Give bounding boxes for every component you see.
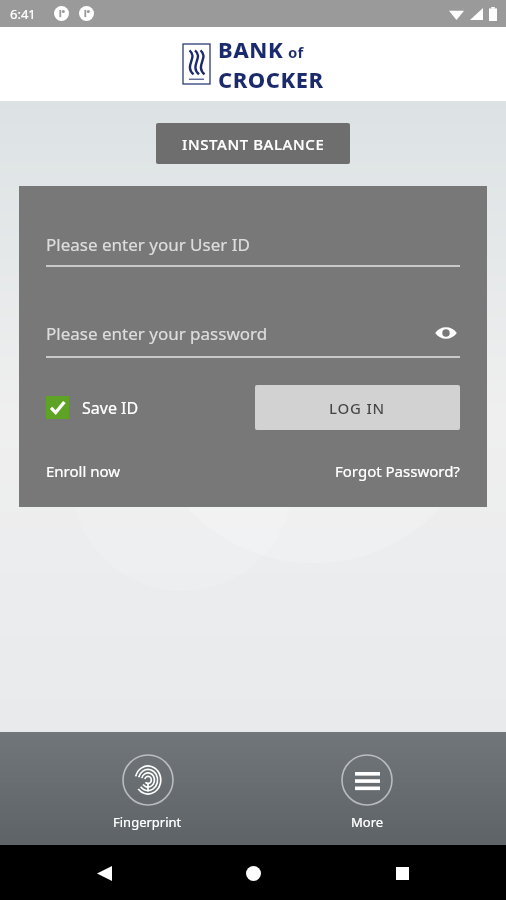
button[interactable]: Home [234,854,272,892]
button[interactable]: Please enter your User ID [46,233,460,267]
staticText: BANK [218,34,284,64]
staticText: of [288,42,304,62]
staticText: Save ID [82,397,139,419]
button[interactable]: Forgot Password? [335,461,460,481]
staticText: Please enter your User ID [46,233,250,256]
staticText: LOG IN [329,398,386,418]
button[interactable]: Fingerprint [109,750,186,835]
staticText: Enroll now [46,461,121,481]
staticText: CROCKER [218,64,324,94]
staticText: INSTANT BALANCE [182,134,325,154]
button[interactable]: Enroll now [46,461,121,481]
button[interactable]: INSTANT BALANCE [156,123,350,164]
button[interactable]: Show password [432,319,460,347]
staticText: 6:41 [10,5,36,23]
staticText: Please enter your password [46,322,432,345]
button[interactable]: More [337,750,397,835]
button[interactable]: Please enter your password [46,319,460,358]
staticText: More [351,813,384,831]
staticText: Fingerprint [113,813,182,831]
button[interactable]: Recents [383,854,421,892]
button[interactable]: LOG IN [255,385,460,430]
button[interactable]: Back [85,854,123,892]
button[interactable]: Save ID [46,396,139,419]
staticText: Forgot Password? [335,461,460,481]
